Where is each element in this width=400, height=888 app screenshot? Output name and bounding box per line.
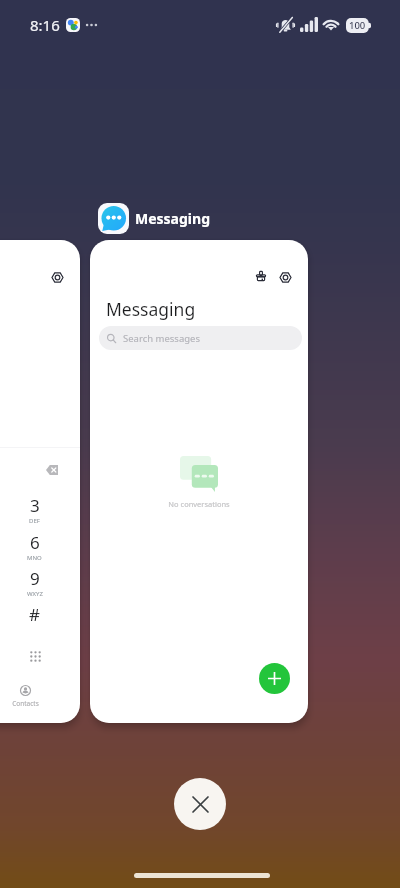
button[interactable]: Contacts (5, 685, 46, 708)
button[interactable]: Theme (256, 271, 266, 281)
staticText: MNO (27, 554, 42, 562)
button[interactable]: Clear all (174, 778, 226, 830)
staticText: 8:16 (30, 15, 60, 35)
staticText: DEF (29, 517, 40, 525)
button[interactable]: Backspace (46, 465, 58, 475)
button[interactable]: 6 (14, 531, 55, 562)
staticText: Messaging (135, 209, 210, 228)
button[interactable]: Start new conversation (259, 663, 290, 694)
button[interactable]: 9 (14, 567, 55, 598)
button[interactable]: Call settings (0, 240, 80, 723)
button[interactable]: Settings (280, 272, 291, 283)
button[interactable]: Keypad (30, 651, 41, 662)
button[interactable]: Search messages (99, 326, 302, 350)
button[interactable]: Theme (90, 240, 308, 723)
staticText: Contacts (12, 699, 39, 708)
staticText: WXYZ (27, 590, 43, 598)
staticText: 9 (30, 567, 40, 590)
staticText: 3 (30, 494, 40, 517)
button[interactable]: Call settings (52, 272, 63, 283)
staticText: 100 (349, 19, 366, 32)
staticText: No conversations (168, 499, 230, 509)
staticText: 6 (30, 531, 40, 554)
staticText: Search messages (123, 332, 200, 345)
staticText: Messaging (106, 297, 196, 321)
staticText: # (29, 603, 40, 626)
button[interactable]: 3 (14, 494, 55, 525)
